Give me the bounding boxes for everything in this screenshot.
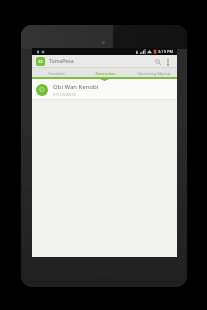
button[interactable]: Favourites xyxy=(81,68,129,79)
staticText: Obi Wan Kenobi xyxy=(53,83,99,91)
button[interactable]: Contacts xyxy=(32,68,81,79)
staticText: 3:19 PM xyxy=(158,49,174,54)
button[interactable]: O xyxy=(32,81,177,99)
staticText: Upcoming Mpesa xyxy=(137,71,170,76)
button[interactable]: Upcoming Mpesa xyxy=(129,68,177,79)
button[interactable]: Search xyxy=(152,56,163,67)
staticText: Contacts xyxy=(48,71,65,76)
staticText: TumaPesa xyxy=(49,58,74,65)
staticText: O xyxy=(39,85,45,95)
button[interactable]: More options xyxy=(163,57,173,67)
staticText: Favourites xyxy=(95,71,116,76)
staticText: 0712345678 xyxy=(53,92,76,97)
